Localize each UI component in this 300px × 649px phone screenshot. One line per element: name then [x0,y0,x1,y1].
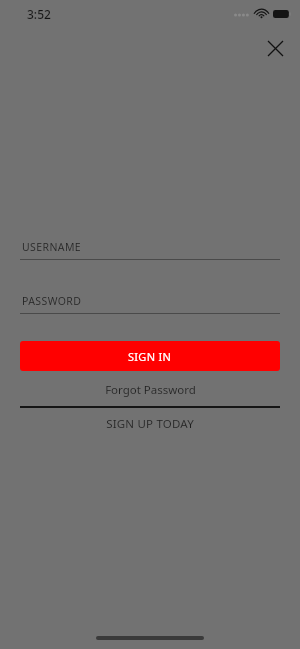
button[interactable]: SIGN UP TODAY [20,414,280,434]
staticText: PASSWORD [22,294,82,308]
button[interactable]: USERNAME [20,240,280,260]
button[interactable]: PASSWORD [20,294,280,314]
staticText: 3:52 [27,6,51,22]
button[interactable]: Close [260,33,290,63]
button[interactable]: Forgot Password [20,380,280,400]
staticText: Forgot Password [105,382,196,398]
staticText: USERNAME [22,240,82,254]
button[interactable]: SIGN IN [20,341,280,371]
staticText: SIGN UP TODAY [106,416,194,432]
staticText: SIGN IN [128,349,172,364]
